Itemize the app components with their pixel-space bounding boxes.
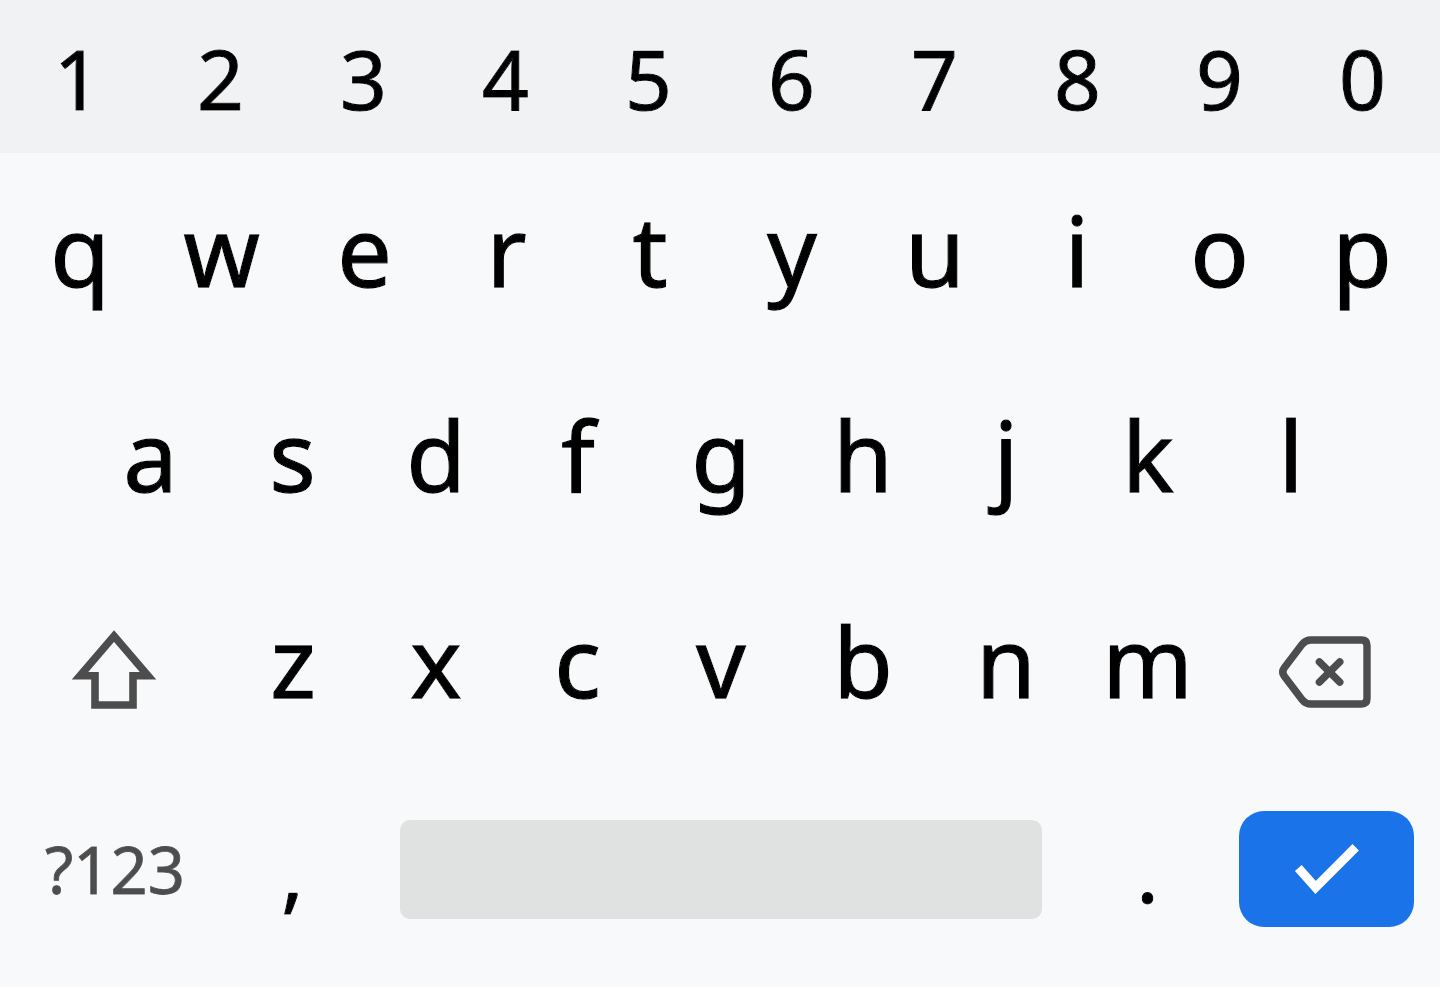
button[interactable]: , — [221, 766, 364, 972]
staticText: j — [993, 388, 1019, 520]
button[interactable]: 2 — [149, 0, 292, 153]
button[interactable]: 3 — [292, 0, 435, 153]
button[interactable]: j — [934, 355, 1077, 561]
button[interactable]: ?123 — [8, 766, 222, 972]
button[interactable]: 5 — [577, 0, 720, 153]
staticText: ?123 — [45, 825, 185, 914]
button[interactable]: . — [1076, 766, 1219, 972]
staticText: o — [1190, 183, 1249, 315]
button[interactable]: h — [791, 355, 934, 561]
staticText: w — [183, 183, 260, 315]
button[interactable]: 9 — [1148, 0, 1291, 153]
button[interactable]: r — [435, 150, 578, 356]
staticText: . — [1136, 813, 1159, 927]
button[interactable]: v — [649, 561, 792, 767]
staticText: 5 — [625, 22, 672, 134]
staticText: r — [486, 183, 527, 315]
staticText: i — [1064, 183, 1090, 315]
staticText: v — [696, 594, 746, 726]
staticText: d — [406, 388, 466, 520]
staticText: p — [1332, 183, 1392, 315]
button[interactable]: d — [364, 355, 507, 561]
button[interactable]: o — [1148, 150, 1291, 356]
button[interactable]: y — [720, 150, 863, 356]
button[interactable]: b — [791, 561, 934, 767]
button[interactable]: u — [863, 150, 1006, 356]
button[interactable]: 6 — [720, 0, 863, 153]
button[interactable]: k — [1076, 355, 1219, 561]
staticText: b — [833, 594, 893, 726]
staticText: 2 — [197, 22, 244, 134]
button[interactable]: z — [221, 561, 364, 767]
staticText: 0 — [1339, 22, 1386, 134]
staticText: z — [270, 594, 316, 726]
button[interactable]: e — [293, 150, 436, 356]
button[interactable]: f — [506, 355, 649, 561]
staticText: y — [767, 183, 817, 315]
button[interactable]: l — [1219, 355, 1362, 561]
button[interactable]: Shift — [8, 561, 222, 767]
staticText: s — [269, 388, 316, 520]
button[interactable]: 0 — [1291, 0, 1434, 153]
button[interactable]: Enter — [1219, 766, 1433, 972]
button[interactable]: 1 — [6, 0, 149, 153]
staticText: h — [833, 388, 893, 520]
staticText: g — [691, 388, 751, 520]
staticText: 7 — [911, 22, 958, 134]
staticText: 9 — [1196, 22, 1243, 134]
staticText: 1 — [54, 22, 101, 134]
staticText: f — [561, 388, 595, 520]
button[interactable]: s — [221, 355, 364, 561]
button[interactable]: n — [934, 561, 1077, 767]
button[interactable]: m — [1076, 561, 1219, 767]
staticText: q — [50, 183, 110, 315]
staticText: 8 — [1054, 22, 1101, 134]
staticText: l — [1278, 388, 1304, 520]
staticText: x — [410, 594, 462, 726]
button[interactable]: w — [150, 150, 293, 356]
button[interactable]: Backspace — [1219, 561, 1433, 767]
button[interactable]: Space — [364, 766, 1077, 972]
staticText: n — [976, 594, 1036, 726]
staticText: e — [337, 183, 392, 315]
button[interactable]: 8 — [1006, 0, 1149, 153]
button[interactable]: c — [506, 561, 649, 767]
button[interactable]: q — [8, 150, 151, 356]
button[interactable]: t — [578, 150, 721, 356]
staticText: c — [554, 594, 601, 726]
button[interactable]: a — [79, 355, 222, 561]
staticText: a — [123, 388, 178, 520]
button[interactable]: 7 — [863, 0, 1006, 153]
button[interactable]: 4 — [434, 0, 577, 153]
staticText: , — [281, 813, 304, 927]
button[interactable]: g — [649, 355, 792, 561]
staticText: u — [905, 183, 965, 315]
staticText: 4 — [482, 22, 529, 134]
staticText: k — [1122, 388, 1174, 520]
staticText: m — [1102, 594, 1193, 726]
staticText: 3 — [340, 22, 387, 134]
button[interactable]: x — [364, 561, 507, 767]
staticText: t — [632, 183, 668, 315]
button[interactable]: p — [1290, 150, 1433, 356]
button[interactable]: i — [1005, 150, 1148, 356]
staticText: 6 — [768, 22, 815, 134]
